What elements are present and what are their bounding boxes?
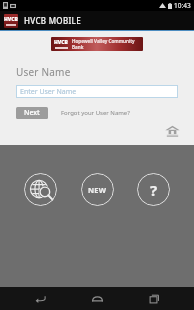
staticText: ?: [150, 180, 158, 200]
staticText: HVCB MOBILE: [24, 15, 81, 26]
button[interactable]: Home: [80, 287, 114, 310]
button[interactable]: Enter User Name: [16, 85, 178, 98]
staticText: Hopewell Valley Community Bank: [72, 38, 140, 50]
button[interactable]: Help: [137, 173, 170, 206]
button[interactable]: HVCB app icon: [4, 14, 18, 28]
button[interactable]: What's new: [81, 173, 114, 206]
button[interactable]: HVCB: [51, 37, 143, 51]
button[interactable]: Back: [23, 287, 57, 310]
staticText: User Name: [16, 65, 71, 79]
button[interactable]: Locations: [24, 173, 57, 206]
staticText: NEW: [88, 185, 107, 195]
button[interactable]: Recents: [137, 287, 171, 310]
button[interactable]: Forgot your User Name?: [61, 107, 130, 119]
staticText: HVCB: [54, 39, 68, 46]
staticText: Forgot your User Name?: [61, 109, 130, 117]
staticText: 10:43: [174, 1, 191, 10]
button[interactable]: Next: [16, 107, 48, 119]
staticText: Next: [24, 108, 40, 118]
staticText: HVCB: [4, 16, 18, 23]
staticText: Enter User Name: [20, 87, 77, 97]
